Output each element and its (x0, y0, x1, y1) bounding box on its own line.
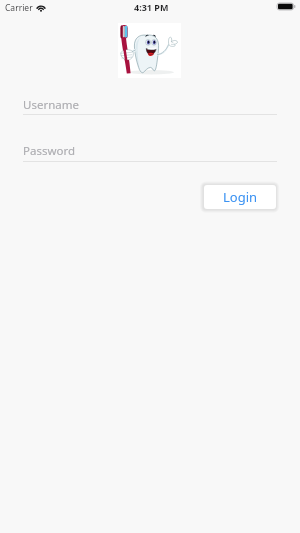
staticText: Password (23, 143, 76, 159)
button[interactable]: Login (204, 185, 276, 209)
other: Battery full (277, 3, 296, 10)
staticText: Login (223, 188, 258, 206)
other: Wi-Fi signal (36, 4, 46, 11)
staticText: Carrier (5, 2, 33, 14)
other: Dental app logo (118, 23, 181, 78)
staticText: 4:31 PM (134, 1, 169, 13)
button[interactable]: Password (23, 132, 277, 160)
button[interactable]: Username (23, 86, 277, 114)
staticText: Username (23, 97, 79, 113)
